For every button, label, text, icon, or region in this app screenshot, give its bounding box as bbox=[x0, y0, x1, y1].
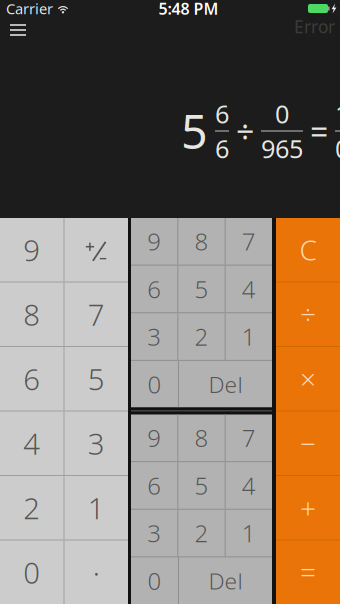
button[interactable]: 5 bbox=[178, 462, 225, 509]
staticText: 1 bbox=[335, 97, 340, 130]
staticText: Del bbox=[208, 566, 242, 596]
staticText: 8 bbox=[194, 225, 208, 257]
staticText: 2 bbox=[194, 321, 208, 352]
staticText: 6 bbox=[215, 97, 229, 130]
button[interactable]: 8 bbox=[178, 414, 225, 461]
button[interactable]: 1 bbox=[226, 510, 272, 556]
staticText: 0 bbox=[147, 368, 161, 400]
staticText: 5 bbox=[181, 100, 208, 162]
staticText: · bbox=[93, 553, 100, 592]
staticText: 5 bbox=[194, 469, 208, 501]
staticText: − bbox=[300, 425, 316, 462]
button[interactable]: 9 bbox=[131, 414, 177, 461]
staticText: 9 bbox=[147, 225, 161, 257]
button[interactable]: Error bbox=[294, 17, 340, 40]
staticText: 7 bbox=[242, 422, 256, 454]
staticText: Error bbox=[294, 15, 335, 38]
staticText: ÷ bbox=[300, 296, 316, 333]
staticText: × bbox=[300, 360, 316, 397]
staticText: 7 bbox=[242, 225, 256, 257]
button[interactable]: 1 bbox=[226, 313, 272, 360]
button[interactable]: 2 bbox=[0, 476, 63, 539]
staticText: 9 bbox=[23, 230, 40, 269]
button[interactable]: 2 bbox=[178, 510, 225, 556]
staticText: = bbox=[300, 554, 316, 591]
staticText: 5:48 PM bbox=[158, 0, 218, 19]
staticText: 6 bbox=[215, 131, 229, 165]
button[interactable]: − bbox=[276, 411, 340, 475]
staticText: 6 bbox=[147, 469, 161, 501]
staticText: 1 bbox=[242, 321, 256, 352]
staticText: + bbox=[300, 489, 316, 526]
button[interactable]: 1 bbox=[64, 476, 128, 539]
staticText: 7 bbox=[88, 295, 105, 334]
button[interactable]: 0 bbox=[0, 540, 63, 604]
button[interactable]: Menu bbox=[0, 17, 36, 44]
button[interactable]: · bbox=[64, 540, 128, 604]
button[interactable]: 6 bbox=[131, 266, 177, 312]
staticText: C bbox=[299, 231, 316, 268]
staticText: 6 bbox=[147, 273, 161, 305]
staticText: Del bbox=[208, 369, 242, 399]
button[interactable]: ÷ bbox=[276, 282, 340, 346]
button[interactable]: 0 bbox=[131, 361, 178, 407]
button[interactable]: 4 bbox=[226, 266, 272, 312]
staticText: 2 bbox=[194, 517, 208, 549]
staticText: 9 bbox=[147, 422, 161, 454]
button[interactable]: 7 bbox=[64, 282, 128, 346]
staticText: = bbox=[310, 110, 328, 152]
button[interactable]: 3 bbox=[131, 313, 177, 360]
button[interactable]: 8 bbox=[0, 282, 63, 346]
button[interactable]: 3 bbox=[131, 510, 177, 556]
staticText: 0 bbox=[335, 131, 340, 165]
staticText: 5 bbox=[88, 359, 105, 398]
staticText: 0 bbox=[147, 565, 161, 597]
button[interactable]: 0 bbox=[131, 557, 178, 604]
button[interactable]: + bbox=[276, 476, 340, 539]
staticText: 0 bbox=[275, 97, 289, 130]
button[interactable]: C bbox=[276, 218, 340, 281]
staticText: 6 bbox=[23, 359, 40, 398]
button[interactable]: 9 bbox=[0, 218, 63, 281]
staticText: 965 bbox=[261, 131, 303, 165]
button[interactable]: 5 bbox=[178, 266, 225, 312]
button[interactable]: 4 bbox=[0, 411, 63, 475]
staticText: ÷ bbox=[236, 110, 254, 152]
staticText: 3 bbox=[88, 424, 105, 463]
staticText: 4 bbox=[242, 273, 256, 305]
staticText: 4 bbox=[23, 424, 40, 463]
button[interactable]: 7 bbox=[226, 218, 272, 265]
staticText: 8 bbox=[194, 422, 208, 454]
staticText: Carrier bbox=[6, 0, 53, 18]
staticText: 3 bbox=[147, 517, 161, 549]
staticText: 8 bbox=[23, 295, 40, 334]
button[interactable]: 6 bbox=[0, 347, 63, 410]
staticText: 0 bbox=[23, 553, 40, 592]
button[interactable]: 8 bbox=[178, 218, 225, 265]
staticText: 3 bbox=[147, 321, 161, 352]
button[interactable]: 5 bbox=[64, 347, 128, 410]
button[interactable]: 3 bbox=[64, 411, 128, 475]
staticText: 5 bbox=[194, 273, 208, 305]
button[interactable]: 4 bbox=[226, 462, 272, 509]
button[interactable]: Plus or minus bbox=[64, 218, 128, 281]
button[interactable]: 9 bbox=[131, 218, 177, 265]
button[interactable]: = bbox=[276, 540, 340, 604]
staticText: 1 bbox=[242, 517, 256, 549]
button[interactable]: 7 bbox=[226, 414, 272, 461]
staticText: 4 bbox=[242, 469, 256, 501]
button[interactable]: 2 bbox=[178, 313, 225, 360]
staticText: 1 bbox=[88, 488, 105, 527]
button[interactable]: 6 bbox=[131, 462, 177, 509]
button[interactable]: Del bbox=[179, 557, 272, 604]
button[interactable]: Del bbox=[179, 361, 272, 407]
button[interactable]: × bbox=[276, 347, 340, 410]
staticText: 2 bbox=[23, 488, 40, 527]
